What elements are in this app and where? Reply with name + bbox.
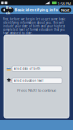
staticText: 1:58 PM — [57, 1, 71, 6]
staticText: Press NEXT to continue — [17, 87, 56, 93]
staticText: Select date of birth — [14, 67, 41, 70]
button[interactable]: Next — [59, 7, 71, 12]
button[interactable]: Select date of birth — [12, 66, 62, 71]
button[interactable]: Select education level — [12, 78, 62, 83]
staticText: Next — [61, 7, 70, 13]
staticText: Basic identifying info — [14, 7, 58, 12]
staticText: Select education level — [14, 79, 44, 82]
staticText: First, before we begin let us get some b… — [3, 17, 65, 35]
staticText: Back — [6, 5, 12, 15]
button[interactable]: Back — [1, 7, 14, 12]
